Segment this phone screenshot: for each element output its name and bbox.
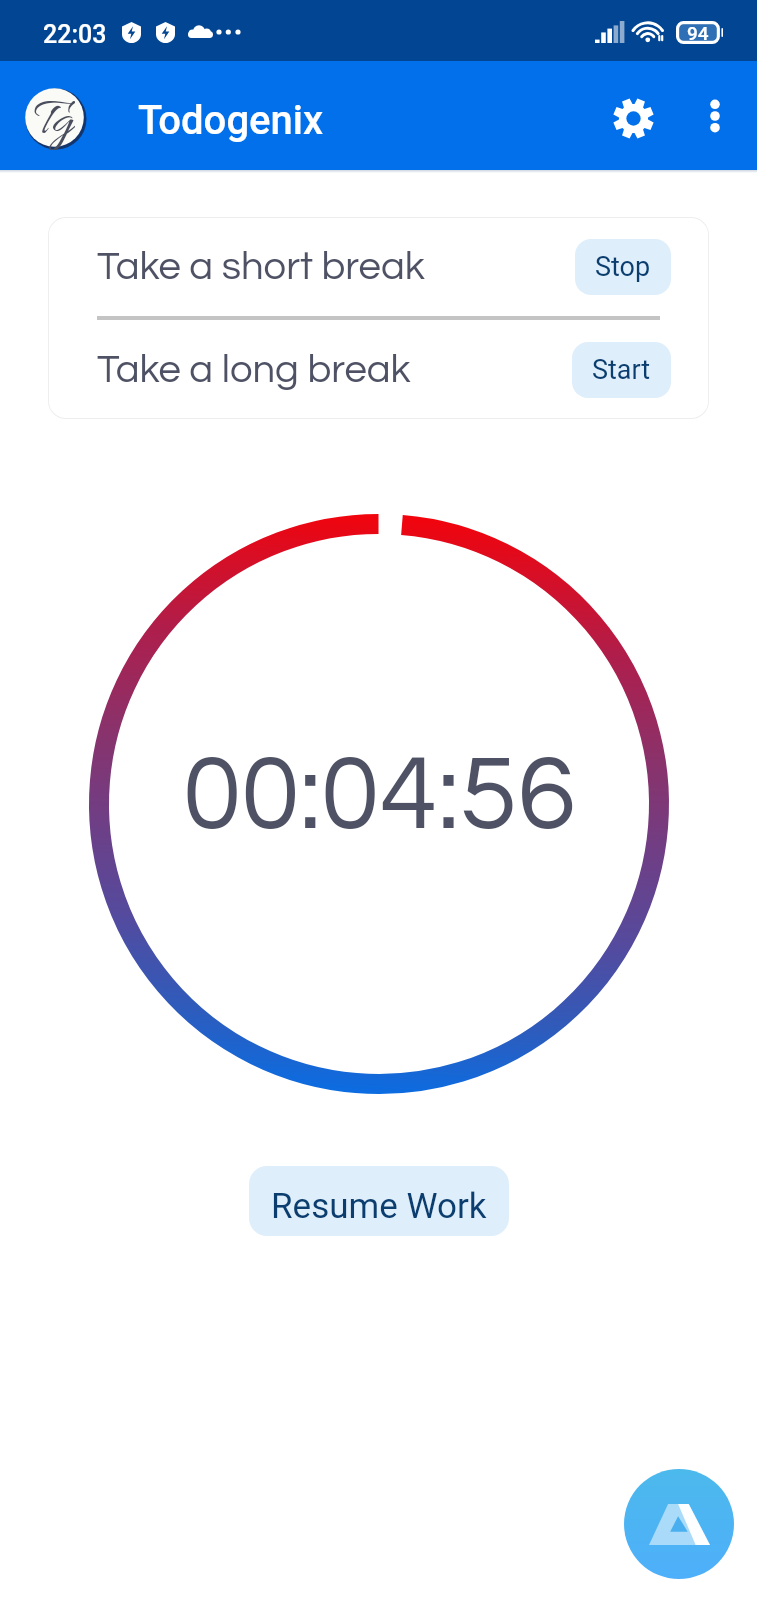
staticText: Tg xyxy=(34,89,75,150)
staticText: Resume Work xyxy=(271,1186,487,1227)
button[interactable]: More options xyxy=(683,84,747,148)
button[interactable]: Resume Work xyxy=(249,1166,509,1236)
button[interactable]: Settings xyxy=(599,84,667,152)
staticText: Todogenix xyxy=(138,97,324,144)
staticText: 22:03 xyxy=(43,20,107,49)
button[interactable]: Add task xyxy=(624,1469,734,1579)
staticText: Take a long break xyxy=(97,349,411,390)
staticText: Start xyxy=(592,354,651,386)
staticText: 00:04:56 xyxy=(183,741,576,850)
button[interactable]: Stop xyxy=(575,239,671,295)
button[interactable]: Start xyxy=(572,342,671,398)
staticText: Stop xyxy=(595,251,651,283)
staticText: Take a short break xyxy=(97,246,425,287)
staticText: 94 xyxy=(687,22,709,44)
